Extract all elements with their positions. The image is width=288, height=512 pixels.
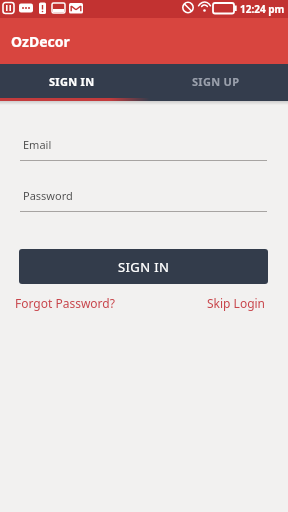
button[interactable]: SIGN IN <box>0 64 144 98</box>
button[interactable]: Forgot Password? <box>15 295 115 311</box>
staticText: SIGN UP <box>192 74 240 89</box>
staticText: Email <box>23 137 52 152</box>
staticText: OzDecor <box>11 32 70 51</box>
staticText: Password <box>23 188 73 203</box>
staticText: 12:24 pm <box>240 2 285 16</box>
button[interactable]: Skip Login <box>207 295 266 311</box>
staticText: SIGN IN <box>118 258 170 276</box>
staticText: Forgot Password? <box>15 295 115 311</box>
staticText: SIGN IN <box>49 74 95 89</box>
button[interactable]: SIGN UP <box>144 64 288 98</box>
button[interactable]: SIGN IN <box>19 249 268 284</box>
staticText: Skip Login <box>207 295 266 311</box>
